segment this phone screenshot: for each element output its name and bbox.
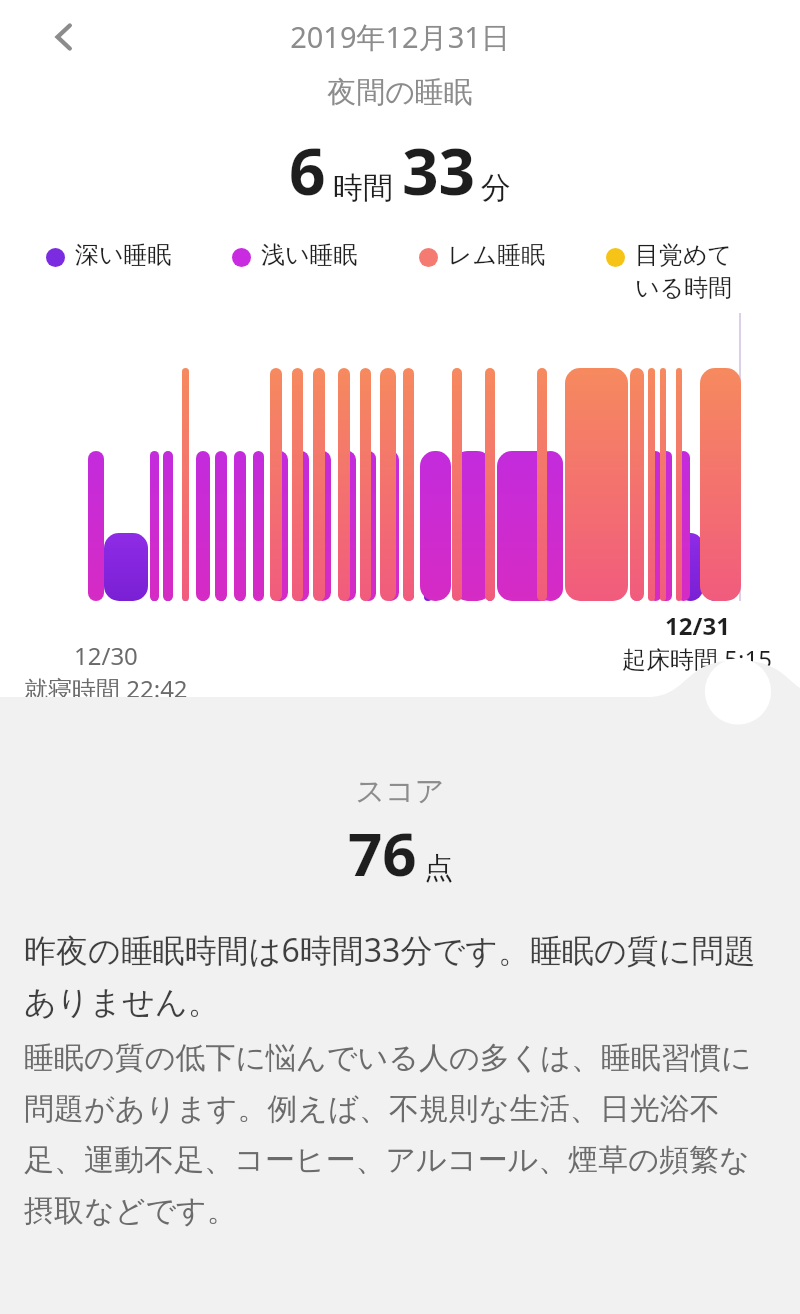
staticText: 12/31 — [665, 609, 730, 642]
staticText: 6 — [289, 127, 326, 214]
staticText: 深い睡眠 — [75, 240, 172, 270]
staticText: 就寝時間 22:42 — [24, 672, 188, 705]
staticText: 12/30 — [74, 639, 138, 672]
staticText: 夜間の睡眠 — [0, 74, 800, 111]
staticText: 分 — [481, 169, 511, 207]
staticText: 昨夜の睡眠時間は6時間33分です。睡眠の質に問題ありません。 — [24, 928, 776, 1023]
button[interactable]: 目覚めて いる時間 — [606, 240, 786, 303]
staticText: 76 — [348, 812, 417, 894]
button[interactable]: レム睡眠 — [419, 240, 606, 270]
button[interactable]: Back — [36, 9, 92, 65]
button[interactable]: 浅い睡眠 — [232, 240, 419, 270]
staticText: 33 — [402, 127, 476, 214]
staticText: 点 — [424, 850, 453, 887]
staticText: 目覚めて いる時間 — [635, 240, 733, 303]
staticText: スコア — [0, 773, 800, 810]
button[interactable]: 深い睡眠 — [46, 240, 232, 270]
staticText: 浅い睡眠 — [261, 240, 358, 270]
staticText: 睡眠の質の低下に悩んでいる人の多くは、睡眠習慣に問題があります。例えば、不規則な… — [24, 1039, 776, 1230]
staticText: 時間 — [333, 169, 393, 207]
staticText: 起床時間 5:15 — [622, 642, 772, 675]
staticText: レム睡眠 — [448, 240, 546, 270]
staticText: 2019年12月31日 — [0, 17, 800, 57]
